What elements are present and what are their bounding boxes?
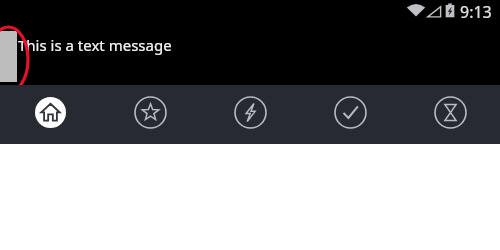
staticText: This is a text message <box>18 35 172 55</box>
button[interactable]: History <box>400 85 500 144</box>
button[interactable]: Power <box>200 85 300 144</box>
button[interactable]: Favorites <box>100 85 200 144</box>
button[interactable]: Home <box>0 85 100 144</box>
button[interactable]: Done <box>300 85 400 144</box>
staticText: 9:13 <box>460 1 492 23</box>
